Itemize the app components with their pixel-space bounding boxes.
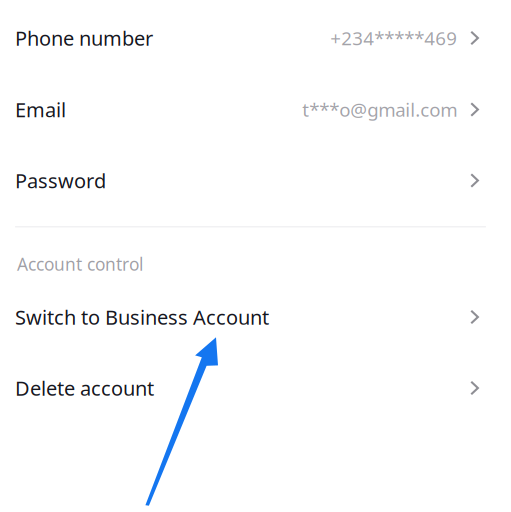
button[interactable]: Switch to Business Account [0, 281, 511, 352]
staticText: Password [15, 167, 106, 194]
staticText: +234*****469 [330, 26, 457, 50]
button[interactable]: Delete account [0, 352, 511, 423]
staticText: Email [15, 96, 66, 123]
staticText: Phone number [15, 25, 153, 51]
button[interactable]: Email [0, 74, 511, 145]
staticText: Switch to Business Account [15, 304, 269, 330]
button[interactable]: Password [0, 145, 511, 216]
staticText: Account control [17, 252, 143, 275]
staticText: Delete account [15, 375, 154, 401]
button[interactable]: Phone number [0, 0, 511, 74]
staticText: t***o@gmail.com [302, 97, 457, 122]
